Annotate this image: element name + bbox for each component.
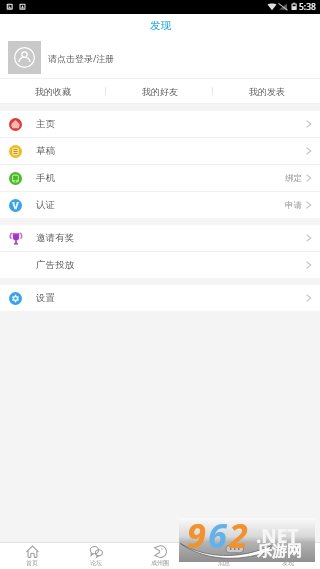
staticText: 广告投放 [36,259,74,271]
staticText: 申请 [285,200,302,211]
staticText: 我的好友 [142,86,178,97]
button[interactable]: 消息 [192,543,256,569]
staticText: 草稿 [36,145,55,157]
button[interactable]: 我的好友 [106,78,213,104]
staticText: 我的发表 [249,86,285,97]
button[interactable]: 请点击登录/注册 [0,33,320,78]
staticText: 邀请有奖 [36,232,74,244]
staticText: 论坛 [90,559,102,567]
staticText: 设置 [36,292,55,304]
staticText: 请点击登录/注册 [48,52,115,64]
staticText: 我的收藏 [35,86,71,97]
button[interactable]: 成州圈 [128,543,192,569]
button[interactable]: 首页 [0,543,64,569]
staticText: 发现 [150,19,171,32]
staticText: 2 [229,512,250,556]
button[interactable]: 手机 [0,165,320,191]
button[interactable]: 认证 [0,192,320,218]
staticText: 乐游网 [257,542,302,561]
staticText: 5:38 [299,1,316,13]
staticText: 发现 [282,559,294,567]
staticText: 绑定 [285,173,302,184]
staticText: 认证 [36,199,55,211]
staticText: .NET [256,523,299,549]
button[interactable]: 设置 [0,285,320,311]
button[interactable]: 主页 [0,111,320,137]
staticText: 主页 [36,118,55,130]
button[interactable]: 草稿 [0,138,320,164]
button[interactable]: 发现 [256,543,320,569]
staticText: 消息 [218,559,230,567]
button[interactable]: 论坛 [64,543,128,569]
staticText: 首页 [26,559,38,567]
staticText: 6 [208,512,229,556]
staticText: 9 [187,512,208,556]
button[interactable]: 我的发表 [213,78,320,104]
staticText: 手机 [36,172,55,184]
button[interactable]: 我的收藏 [0,78,106,104]
staticText: 成州圈 [151,559,169,567]
button[interactable]: 邀请有奖 [0,225,320,251]
button[interactable]: 广告投放 [0,252,320,278]
